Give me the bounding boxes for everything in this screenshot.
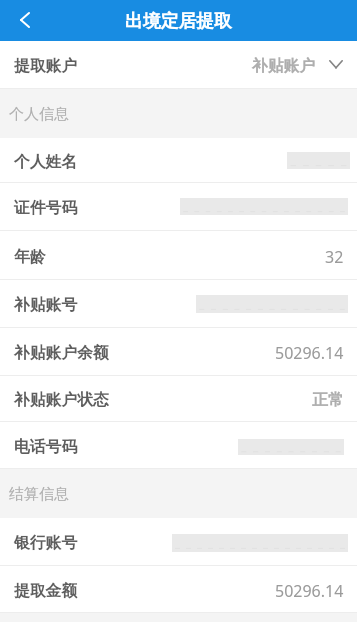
- staticText: 提取账户: [14, 56, 78, 76]
- button[interactable]: 补贴账户状态: [0, 376, 357, 422]
- staticText: 50296.14: [275, 580, 344, 602]
- staticText: 补贴账户状态: [14, 390, 109, 410]
- staticText: 电话号码: [14, 437, 78, 457]
- staticText: 补贴账号: [14, 295, 78, 315]
- staticText: 50296.14: [275, 342, 344, 364]
- button[interactable]: 年龄: [0, 231, 357, 280]
- staticText: 32: [325, 246, 344, 268]
- staticText: 补贴账户: [252, 56, 316, 76]
- button[interactable]: 补贴账号: [0, 280, 357, 328]
- button[interactable]: 银行账号: [0, 518, 357, 566]
- staticText: 提取金额: [14, 581, 78, 601]
- staticText: 结算信息: [9, 485, 69, 504]
- staticText: 银行账号: [14, 533, 78, 553]
- staticText: 补贴账户余额: [14, 343, 109, 363]
- staticText: 个人姓名: [14, 152, 78, 172]
- button[interactable]: 提取金额: [0, 566, 357, 613]
- button[interactable]: 个人姓名: [0, 138, 357, 183]
- staticText: 正常: [312, 390, 344, 410]
- button[interactable]: Back: [0, 0, 50, 41]
- button[interactable]: 证件号码: [0, 183, 357, 231]
- staticText: 个人信息: [9, 105, 69, 124]
- staticText: 证件号码: [14, 198, 78, 218]
- button[interactable]: 电话号码: [0, 422, 357, 469]
- staticText: 年龄: [14, 247, 46, 267]
- staticText: 出境定居提取: [125, 10, 232, 32]
- button[interactable]: 补贴账户余额: [0, 328, 357, 376]
- button[interactable]: 提取账户: [0, 41, 357, 89]
